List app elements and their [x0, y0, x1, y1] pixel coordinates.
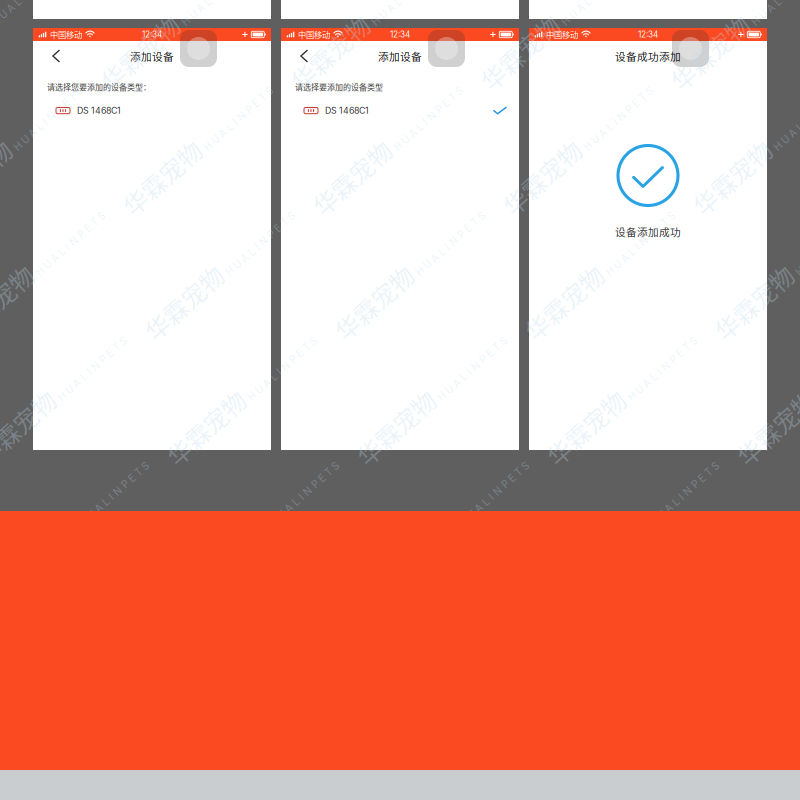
- staticText: DS 1468C1: [77, 105, 121, 116]
- button[interactable]: DS 1468C1: [33, 100, 271, 122]
- staticText: 添加设备: [130, 48, 174, 64]
- staticText: H U A L I N P E T S: [4, 113, 93, 125]
- staticText: 请选择要添加的设备类型: [295, 81, 383, 93]
- staticText: 添加设备: [378, 48, 422, 64]
- staticText: 华霖宠物: [516, 285, 612, 320]
- staticText: H U A L I N P E T S: [640, 488, 729, 500]
- staticText: 设备成功添加: [615, 48, 681, 64]
- staticText: H U A L I N P E T S: [764, 113, 800, 125]
- staticText: 华霖宠物: [348, 410, 444, 445]
- staticText: 华霖宠物: [158, 410, 254, 445]
- staticText: DS 1468C1: [325, 105, 369, 116]
- staticText: 华霖宠物: [472, 35, 568, 70]
- staticText: 华霖宠物: [706, 285, 800, 320]
- staticText: 华霖宠物: [684, 160, 780, 195]
- staticText: 12:34: [142, 29, 162, 39]
- staticText: 华霖宠物: [304, 160, 400, 195]
- staticText: 华霖宠物: [114, 160, 210, 195]
- staticText: 设备添加成功: [615, 224, 681, 239]
- staticText: H U A L I N P E T S: [216, 238, 305, 250]
- staticText: H U A L I N P E T S: [70, 488, 159, 500]
- staticText: 12:34: [638, 29, 658, 39]
- staticText: 华霖宠物: [728, 410, 800, 445]
- staticText: H U A L I N P E T S: [194, 113, 283, 125]
- staticText: 华霖宠物: [136, 285, 232, 320]
- staticText: 中国移动: [546, 28, 578, 40]
- staticText: 华霖宠物: [282, 35, 378, 70]
- staticText: 华霖宠物: [662, 35, 758, 70]
- staticText: 华霖宠物: [326, 285, 422, 320]
- staticText: 中国移动: [50, 28, 82, 40]
- staticText: 12:34: [390, 29, 410, 39]
- staticText: 华霖宠物: [92, 35, 188, 70]
- staticText: H U A L I N P E T S: [450, 488, 539, 500]
- staticText: H U A L I N P E T S: [26, 238, 115, 250]
- staticText: 华霖宠物: [0, 160, 20, 195]
- staticText: 华霖宠物: [538, 410, 634, 445]
- staticText: H U A L I N P E T S: [238, 363, 327, 375]
- staticText: 中国移动: [298, 28, 330, 40]
- staticText: 华霖宠物: [0, 285, 42, 320]
- staticText: 华霖宠物: [0, 410, 64, 445]
- staticText: H U A L I N P E T S: [260, 488, 349, 500]
- button[interactable]: Back: [287, 41, 321, 71]
- staticText: 华霖宠物: [494, 160, 590, 195]
- staticText: 请选择您要添加的设备类型：: [47, 81, 151, 93]
- button[interactable]: Back: [39, 41, 73, 71]
- button[interactable]: DS 1468C1: [281, 100, 519, 122]
